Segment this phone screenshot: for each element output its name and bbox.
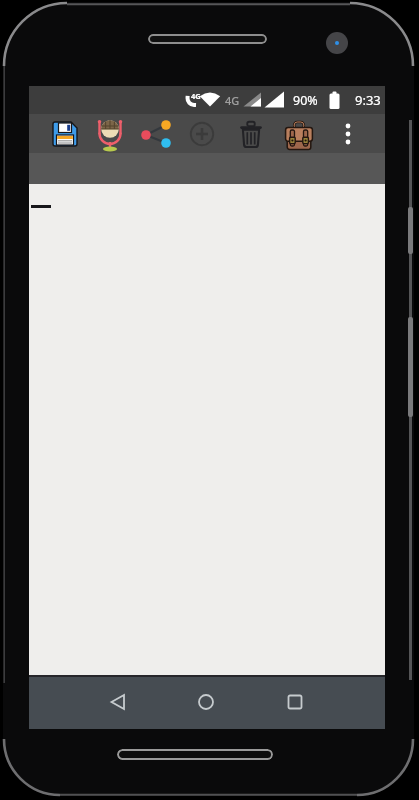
button[interactable] <box>98 682 138 722</box>
staticText: 4G <box>225 93 240 108</box>
button[interactable] <box>232 114 268 153</box>
staticText: 90% <box>293 92 318 109</box>
button[interactable] <box>330 114 366 153</box>
button[interactable] <box>47 114 83 153</box>
staticText: 9:33 <box>355 91 381 109</box>
button[interactable] <box>139 114 175 153</box>
staticText: 4G <box>191 91 201 101</box>
button[interactable] <box>184 114 220 153</box>
button[interactable] <box>186 682 226 722</box>
button[interactable] <box>275 682 315 722</box>
button[interactable] <box>93 114 129 153</box>
button[interactable] <box>280 114 316 153</box>
